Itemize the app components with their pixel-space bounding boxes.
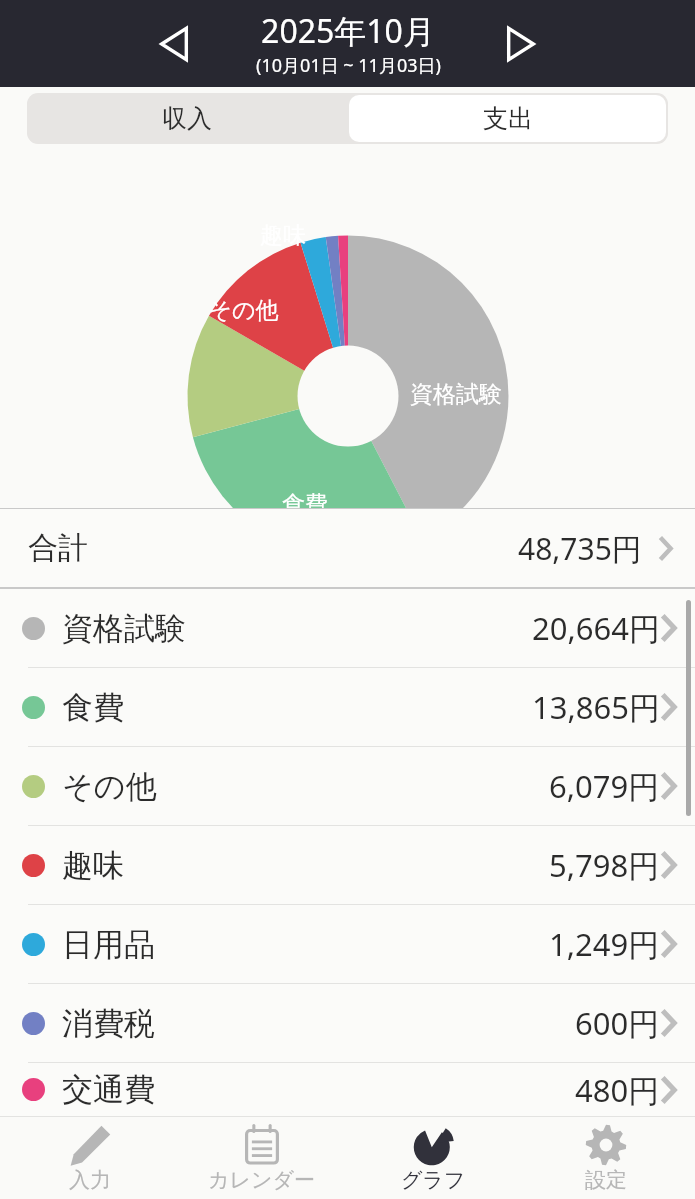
button[interactable]: グラフ — [351, 1117, 516, 1199]
staticText: 交通費 — [62, 1070, 155, 1109]
staticText: 食費 — [282, 490, 328, 519]
staticText: その他 — [208, 296, 279, 325]
button[interactable]: 食費 — [0, 668, 695, 746]
staticText: 600円 — [575, 1002, 660, 1044]
staticText: 設定 — [585, 1167, 627, 1193]
staticText: 資格試験 — [62, 609, 186, 648]
button[interactable]: 交通費 — [0, 1063, 695, 1116]
staticText: 収入 — [162, 103, 212, 134]
staticText: カレンダー — [208, 1167, 315, 1193]
button[interactable]: 合計 — [0, 509, 695, 587]
staticText: 趣味 — [260, 221, 306, 250]
button[interactable]: 前の月 — [142, 12, 206, 76]
button[interactable]: 収入 — [27, 93, 347, 144]
button[interactable]: 支出 — [349, 95, 666, 142]
staticText: 1,249円 — [549, 923, 660, 965]
staticText: (10月01日 ~ 11月03日) — [256, 53, 441, 78]
staticText: 食費 — [62, 688, 124, 727]
staticText: 5,798円 — [549, 844, 660, 886]
staticText: 日用品 — [62, 925, 155, 964]
button[interactable]: 消費税 — [0, 984, 695, 1062]
staticText: その他 — [62, 767, 157, 806]
button[interactable]: 入力 — [7, 1117, 172, 1199]
staticText: 480円 — [575, 1069, 660, 1111]
staticText: 合計 — [28, 529, 88, 567]
staticText: 入力 — [69, 1167, 111, 1193]
button[interactable]: カレンダー — [179, 1117, 344, 1199]
staticText: 趣味 — [62, 846, 124, 885]
staticText: 13,865円 — [532, 686, 660, 728]
staticText: グラフ — [401, 1167, 466, 1193]
button[interactable]: 日用品 — [0, 905, 695, 983]
staticText: 48,735円 — [518, 528, 642, 569]
staticText: 支出 — [483, 103, 533, 134]
button[interactable]: その他 — [0, 747, 695, 825]
button[interactable]: 資格試験 — [0, 589, 695, 667]
staticText: 20,664円 — [532, 607, 660, 649]
staticText: 6,079円 — [549, 765, 660, 807]
button[interactable]: 設定 — [523, 1117, 688, 1199]
staticText: 資格試験 — [410, 380, 502, 409]
button[interactable]: 趣味 — [0, 826, 695, 904]
button[interactable]: 次の月 — [489, 12, 553, 76]
staticText: 消費税 — [62, 1004, 155, 1043]
staticText: 2025年10月 — [261, 9, 435, 53]
